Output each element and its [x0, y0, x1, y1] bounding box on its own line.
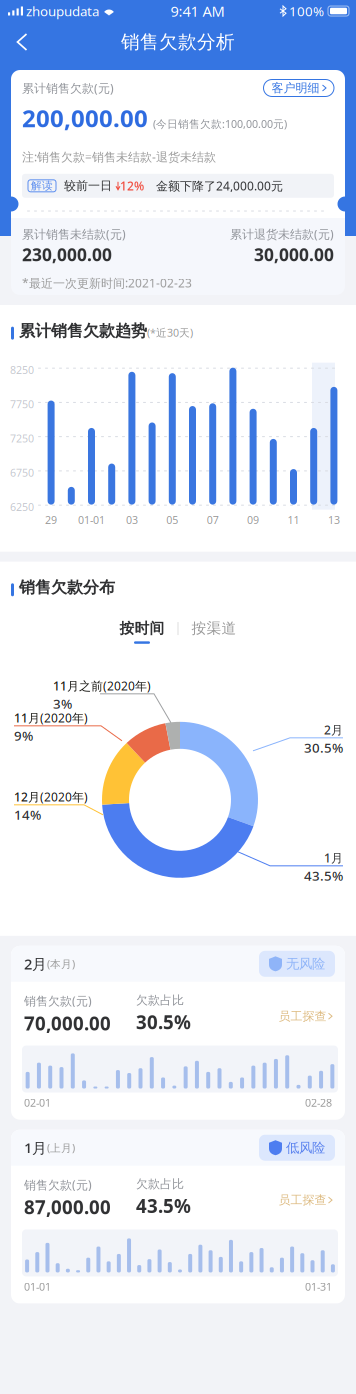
staticText: 8250 — [10, 363, 34, 377]
staticText: (今日销售欠款:100,00.00元) — [153, 117, 287, 131]
staticText: 01-01 — [78, 513, 105, 527]
staticText: 累计销售欠款趋势 — [14, 321, 147, 341]
staticText: 87,000.00 — [24, 1195, 111, 1219]
staticText: 按渠道 — [191, 619, 236, 637]
staticText: 70,000.00 — [24, 1011, 111, 1036]
staticText: 累计退货未结款(元) — [230, 226, 334, 242]
staticText: 1月 — [24, 1138, 47, 1157]
staticText: 9:41 AM — [170, 1, 224, 21]
button[interactable]: 按渠道 — [191, 619, 236, 644]
staticText: 6750 — [10, 465, 34, 480]
staticText: 销售欠款(元) — [24, 1177, 92, 1193]
staticText: 按时间 — [119, 619, 164, 637]
button[interactable]: 按时间 — [119, 619, 164, 644]
staticText: (本月) — [47, 957, 75, 971]
staticText: 03 — [126, 513, 138, 527]
staticText: 员工探查 — [278, 1193, 326, 1207]
staticText: 解读 — [31, 179, 53, 192]
staticText: 13 — [328, 513, 340, 527]
staticText: 43.5% — [136, 1193, 191, 1218]
staticText: 3% — [53, 695, 72, 712]
staticText: 02-01 — [24, 1095, 51, 1110]
staticText: 09 — [247, 513, 259, 527]
staticText: 7750 — [10, 397, 34, 411]
staticText: 7250 — [10, 431, 34, 445]
staticText: 2月 — [24, 954, 47, 974]
staticText: 无风险 — [286, 956, 325, 972]
staticText: 02-28 — [305, 1095, 332, 1110]
staticText: 9% — [14, 727, 33, 744]
button[interactable]: 员工探查 — [278, 1177, 332, 1207]
staticText: (上月) — [47, 1141, 75, 1155]
staticText: 员工探查 — [278, 1009, 326, 1023]
staticText: 11月(2020年) — [14, 710, 88, 726]
staticText: 销售欠款分析 — [121, 30, 235, 53]
staticText: 200,000.00 — [22, 102, 148, 134]
staticText: 05 — [166, 513, 178, 527]
staticText: 金额下降了24,000.00元 — [144, 178, 283, 194]
staticText: 29 — [45, 513, 57, 527]
staticText: 2月 — [324, 722, 343, 738]
staticText: 12% — [120, 178, 144, 194]
staticText: 累计销售欠款(元) — [22, 80, 114, 96]
staticText: 低风险 — [286, 1139, 325, 1156]
staticText: *最近一次更新时间:2021-02-23 — [22, 275, 192, 291]
staticText: 07 — [207, 513, 219, 527]
staticText: 销售欠款分布 — [14, 578, 115, 597]
staticText: 11 — [287, 513, 299, 527]
staticText: 11月之前(2020年) — [53, 678, 151, 694]
staticText: 6250 — [10, 500, 34, 514]
staticText: 欠款占比 — [136, 1177, 184, 1191]
staticText: 累计销售未结款(元) — [22, 226, 126, 242]
staticText: 销售欠款(元) — [24, 993, 92, 1009]
staticText: 14% — [14, 806, 41, 823]
staticText: (*近30天) — [147, 325, 193, 340]
staticText: 较前一日 — [56, 178, 112, 193]
button[interactable]: 员工探查 — [278, 993, 332, 1023]
staticText: 30.5% — [304, 739, 343, 756]
staticText: 01-01 — [24, 1279, 51, 1294]
staticText: 注:销售欠款=销售未结款-退货未结款 — [22, 149, 216, 165]
staticText: 1月 — [324, 850, 343, 866]
staticText: 30.5% — [136, 1010, 191, 1034]
button[interactable]: Back — [0, 22, 44, 62]
staticText: 欠款占比 — [136, 993, 184, 1007]
staticText: 客户明细 — [271, 81, 319, 95]
button[interactable]: 客户明细 — [263, 79, 334, 96]
staticText: zhoupudata — [23, 2, 99, 20]
staticText: 01-31 — [305, 1279, 332, 1294]
staticText: 230,000.00 — [22, 243, 112, 266]
staticText: 100% — [286, 2, 324, 20]
staticText: 43.5% — [304, 867, 343, 884]
staticText: 12月(2020年) — [14, 789, 88, 805]
staticText: 30,000.00 — [254, 243, 334, 266]
